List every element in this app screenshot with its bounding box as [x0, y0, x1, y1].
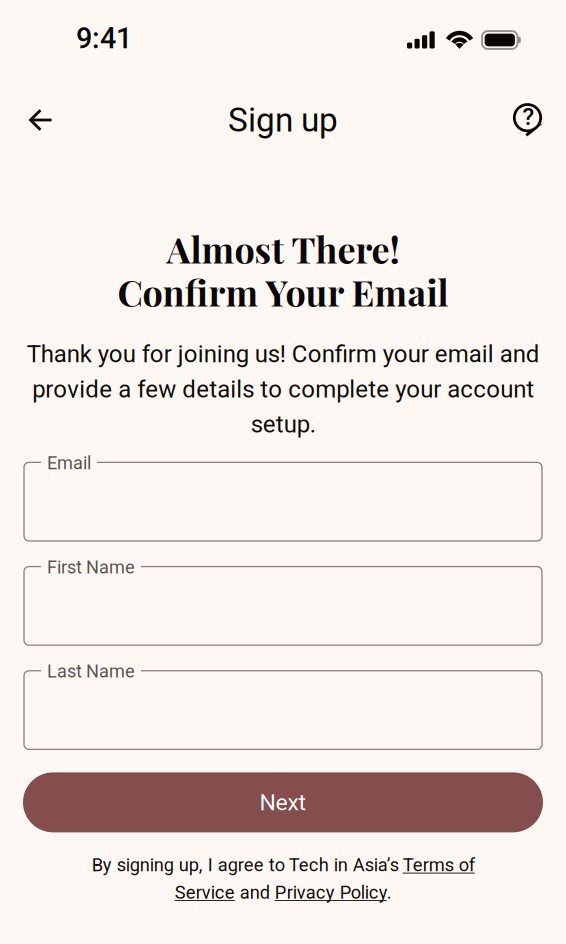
staticText: Sign up [228, 100, 338, 140]
staticText: Last Name [47, 661, 135, 682]
staticText: Almost There! [166, 224, 399, 272]
staticText: First Name [47, 557, 135, 578]
staticText: By signing up, I agree to Tech in Asia’s… [91, 854, 474, 903]
button[interactable]: Next [23, 772, 543, 832]
staticText: Thank you for joining us! Confirm your e… [26, 340, 539, 438]
staticText: Next [259, 789, 306, 816]
staticText: 9:41 [76, 22, 132, 55]
button[interactable]: Help [502, 94, 554, 146]
staticText: Confirm Your Email [117, 267, 448, 315]
button[interactable]: Back [15, 94, 67, 146]
staticText: Email [47, 452, 91, 474]
staticText: ? [523, 103, 535, 131]
